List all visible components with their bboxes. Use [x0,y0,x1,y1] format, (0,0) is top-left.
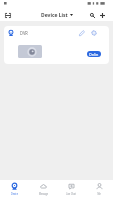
button[interactable]: Device settings [88,27,100,39]
button[interactable]: Camera preview [18,45,42,58]
button[interactable]: Edit device [76,27,88,39]
staticText: Device List [41,12,68,19]
staticText: Online [89,51,99,57]
staticText: Message [39,191,48,196]
button[interactable]: DVR [4,26,109,64]
button[interactable]: Me [85,180,113,200]
button[interactable]: Scan QR code [2,9,14,21]
staticText: Me [97,191,101,196]
button[interactable]: Add device [96,9,108,21]
button[interactable]: Device List [41,9,73,21]
staticText: Device [11,191,18,196]
button[interactable]: Search [86,9,98,21]
staticText: Live Chat [66,191,76,196]
button[interactable]: Online [87,51,101,57]
staticText: DVR [20,30,28,36]
button[interactable]: Device [0,180,29,200]
button[interactable]: Message [29,180,57,200]
button[interactable]: Live Chat [57,180,85,200]
